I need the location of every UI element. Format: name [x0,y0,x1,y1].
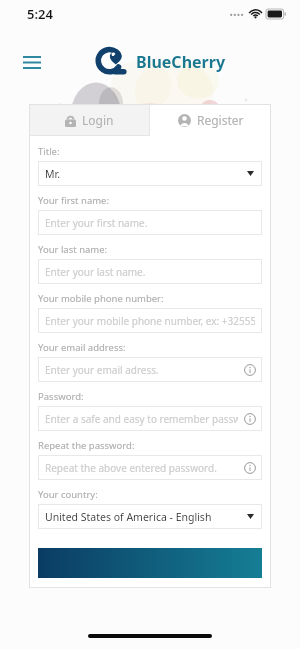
staticText: Your mobile phone number: [38,292,164,305]
button[interactable]: More information [244,413,256,425]
button[interactable]: Mr. [38,161,262,186]
staticText: Repeat the password: [38,439,135,452]
staticText: Your last name: [38,243,108,256]
staticText: Title: [38,145,60,158]
button[interactable]: Enter your mobile phone number, ex: +325… [38,308,262,333]
button[interactable]: Open menu [14,44,50,80]
staticText: Your country: [38,488,98,501]
staticText: Login [82,112,114,128]
staticText: Enter your mobile phone number, ex: +325… [45,314,255,328]
staticText: Register [197,112,244,128]
button[interactable]: Enter a safe and easy to remember passwo… [38,406,262,431]
button[interactable]: More information [244,462,256,474]
staticText: Mr. [45,167,60,181]
button[interactable]: Enter your first name. [38,210,262,235]
button[interactable]: Enter your email adress. [38,357,262,382]
button[interactable]: More information [244,364,256,376]
button[interactable]: Enter your last name. [38,259,262,284]
staticText: Enter your last name. [45,265,146,279]
staticText: Your email address: [38,341,126,354]
staticText: BlueCherry [136,51,226,73]
staticText: Enter a safe and easy to remember passwo… [45,412,238,426]
staticText: Repeat the above entered password. [45,461,217,475]
staticText: Enter your first name. [45,216,148,230]
button[interactable]: United States of America - English [38,504,262,529]
staticText: 5:24 [27,5,53,23]
staticText: Enter your email adress. [45,363,159,377]
staticText: Password: [38,390,84,403]
staticText: Your first name: [38,194,109,207]
button[interactable]: Repeat the above entered password. [38,455,262,480]
button[interactable]: Register [38,548,262,578]
button[interactable]: Login [29,104,150,136]
button[interactable]: Register [150,104,271,136]
staticText: United States of America - English [45,510,212,524]
